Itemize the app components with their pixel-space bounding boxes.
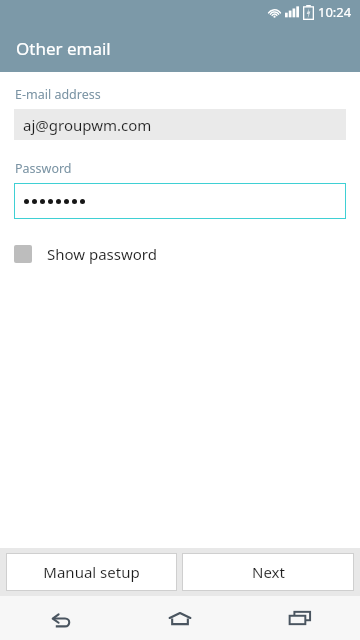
staticText: Manual setup [43,562,140,582]
button[interactable]: Show password [14,241,167,267]
staticText: Next [252,562,285,582]
staticText: E-mail address [15,86,101,103]
staticText: Other email [16,37,111,60]
button[interactable]: Back [0,596,120,640]
button[interactable] [14,183,346,219]
staticText: Password [15,160,72,177]
button[interactable]: Next [182,553,354,591]
button[interactable]: Manual setup [6,553,177,591]
button[interactable]: Recent apps [240,596,360,640]
staticText: aj@groupwm.com [23,115,152,135]
staticText: Show password [47,244,157,264]
button[interactable]: Home [120,596,240,640]
staticText: 10:24 [318,3,352,21]
button[interactable]: aj@groupwm.com [14,109,346,140]
